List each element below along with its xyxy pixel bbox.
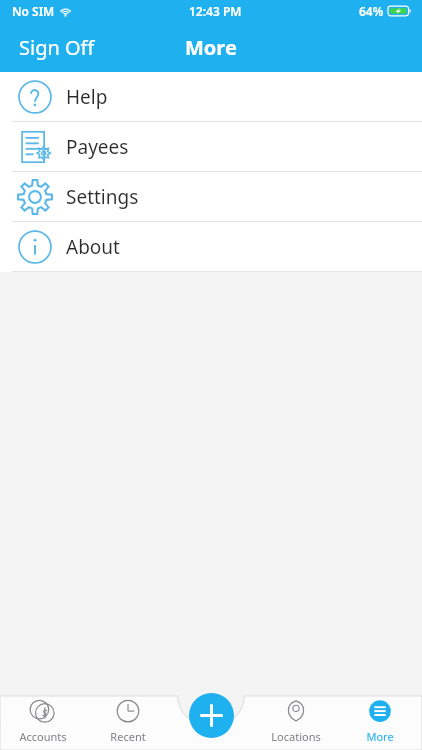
staticText: No SIM [12,3,55,19]
button[interactable]: Payees [0,122,422,171]
button[interactable]: Recent [85,689,170,750]
staticText: Locations [271,729,321,744]
staticText: More [366,729,394,744]
staticText: More [185,34,237,61]
staticText: Recent [110,729,146,744]
button[interactable]: About [0,222,422,271]
button[interactable]: Settings [0,172,422,221]
button[interactable]: Sign Off [0,28,107,67]
staticText: Accounts [19,729,67,744]
staticText: 64% [359,3,384,19]
staticText: Sign Off [19,34,95,61]
staticText: Payees [66,134,129,160]
button[interactable]: Add [189,693,234,738]
button[interactable]: Help [0,72,422,121]
staticText: Settings [66,184,139,210]
button[interactable]: Accounts [0,689,85,750]
button[interactable]: Locations [254,689,338,750]
staticText: Help [66,84,108,110]
staticText: About [66,234,120,260]
staticText: 12:43 PM [189,3,242,19]
button[interactable]: More [338,689,422,750]
